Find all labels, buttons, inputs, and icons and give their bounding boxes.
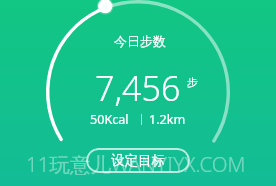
staticText: 1.2km bbox=[149, 111, 186, 128]
staticText: 今日步数 bbox=[114, 33, 166, 49]
button[interactable]: 设定目标 bbox=[86, 148, 190, 173]
staticText: 50Kcal bbox=[90, 111, 129, 128]
staticText: 11玩意儿WANYIYX.COM bbox=[26, 150, 246, 178]
staticText: 设定目标 bbox=[111, 152, 165, 169]
staticText: 步 bbox=[187, 75, 198, 89]
staticText: 7,456 bbox=[95, 65, 181, 111]
